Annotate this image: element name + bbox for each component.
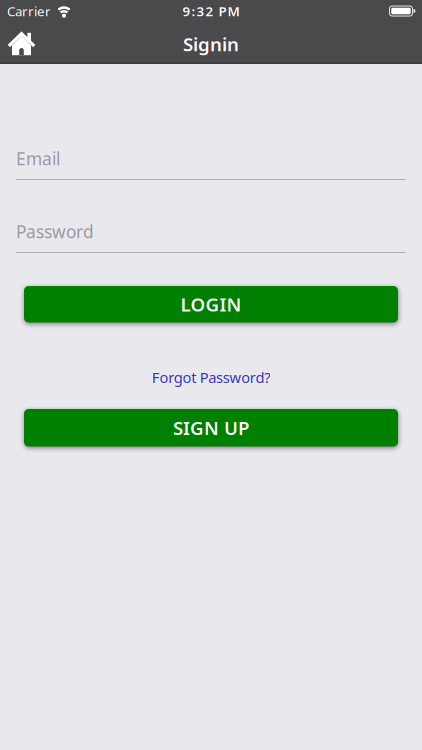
- staticText: Email: [16, 147, 60, 170]
- staticText: Carrier: [7, 2, 51, 20]
- staticText: SIGN UP: [173, 415, 249, 440]
- button[interactable]: Forgot Password?: [152, 367, 270, 387]
- staticText: Password: [16, 220, 94, 243]
- staticText: Forgot Password?: [152, 367, 270, 387]
- staticText: 9:32 PM: [182, 2, 239, 20]
- button[interactable]: SIGN UP: [24, 409, 398, 446]
- button[interactable]: LOGIN: [24, 286, 398, 322]
- staticText: Signin: [183, 32, 239, 56]
- button[interactable]: [8, 32, 35, 56]
- staticText: LOGIN: [180, 292, 241, 317]
